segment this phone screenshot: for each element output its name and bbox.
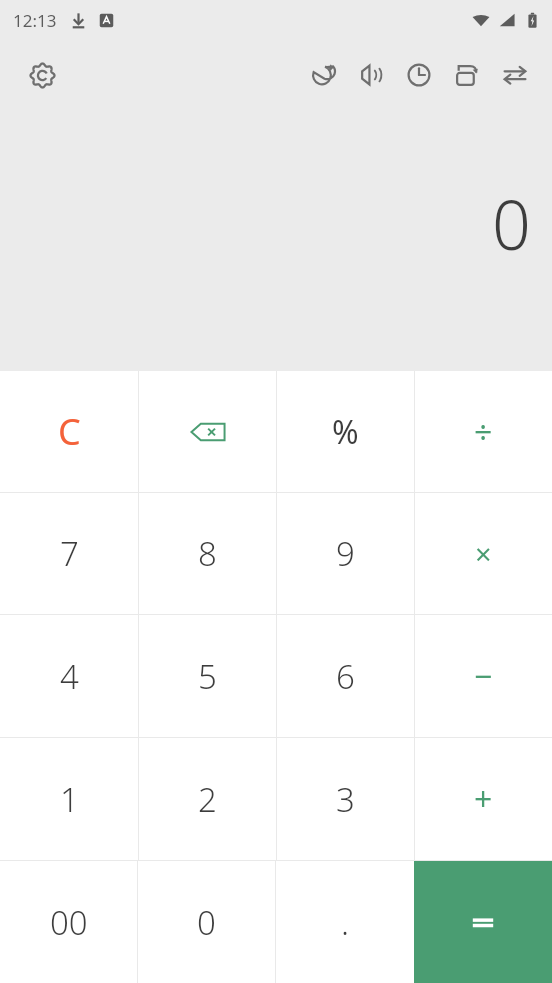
button[interactable]: C bbox=[0, 371, 138, 492]
button[interactable]: Sound bbox=[347, 51, 395, 99]
staticText: 3 bbox=[336, 777, 355, 822]
button[interactable]: + bbox=[415, 738, 552, 860]
staticText: 5 bbox=[198, 654, 217, 699]
button[interactable]: 8 bbox=[139, 493, 276, 614]
button[interactable]: Settings bbox=[18, 51, 66, 99]
button[interactable]: Floating window bbox=[443, 51, 491, 99]
staticText: 1 bbox=[60, 777, 79, 822]
button[interactable]: Equals bbox=[414, 861, 552, 983]
button[interactable]: 1 bbox=[0, 738, 138, 860]
staticText: × bbox=[475, 534, 492, 573]
staticText: − bbox=[474, 654, 493, 698]
button[interactable]: 4 bbox=[0, 615, 138, 737]
button[interactable]: Dark mode bbox=[299, 51, 347, 99]
button[interactable]: − bbox=[415, 615, 552, 737]
staticText: C bbox=[58, 407, 81, 456]
staticText: 12:13 bbox=[13, 9, 57, 32]
button[interactable]: 3 bbox=[277, 738, 414, 860]
staticText: 6 bbox=[336, 654, 355, 699]
staticText: 8 bbox=[198, 531, 217, 576]
button[interactable]: 0 bbox=[138, 861, 275, 983]
button[interactable]: 00 bbox=[0, 861, 137, 983]
button[interactable]: 5 bbox=[139, 615, 276, 737]
button[interactable]: Backspace bbox=[139, 371, 276, 492]
staticText: 00 bbox=[50, 900, 88, 945]
button[interactable]: 6 bbox=[277, 615, 414, 737]
button[interactable]: 2 bbox=[139, 738, 276, 860]
staticText: 2 bbox=[198, 777, 217, 822]
button[interactable]: 9 bbox=[277, 493, 414, 614]
staticText: 4 bbox=[60, 654, 79, 699]
button[interactable]: % bbox=[277, 371, 414, 492]
button[interactable]: History bbox=[395, 51, 443, 99]
button[interactable]: 7 bbox=[0, 493, 138, 614]
button[interactable]: ÷ bbox=[415, 371, 552, 492]
staticText: 9 bbox=[336, 531, 355, 576]
staticText: + bbox=[474, 777, 493, 821]
staticText: % bbox=[332, 410, 359, 454]
staticText: 0 bbox=[492, 177, 531, 270]
button[interactable]: . bbox=[276, 861, 414, 983]
button[interactable]: × bbox=[415, 493, 552, 614]
staticText: . bbox=[341, 900, 350, 945]
staticText: 0 bbox=[197, 900, 216, 945]
staticText: ÷ bbox=[474, 410, 493, 454]
staticText: 7 bbox=[60, 531, 79, 576]
button[interactable]: Unit converter bbox=[491, 51, 539, 99]
